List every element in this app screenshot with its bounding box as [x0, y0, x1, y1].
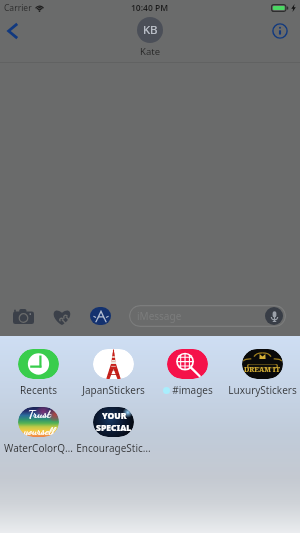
button[interactable]: App Store — [90, 307, 111, 325]
staticText: iMessage — [137, 309, 182, 323]
button[interactable]: JapanStickers — [76, 349, 151, 397]
button[interactable]: Back — [1, 19, 25, 43]
staticText: Kate — [140, 45, 160, 58]
button[interactable]: iMessage — [129, 305, 286, 327]
staticText: KB — [143, 22, 158, 38]
button[interactable]: YOUR — [76, 407, 151, 455]
staticText: WaterColorQuo... — [1, 441, 76, 455]
button[interactable]: Dictate — [265, 307, 283, 325]
button[interactable]: Recents — [1, 349, 76, 397]
staticText: YOUR — [102, 410, 127, 422]
button[interactable]: KB — [137, 17, 163, 58]
staticText: LuxuryStickers — [228, 383, 297, 397]
staticText: Trust — [28, 407, 51, 421]
staticText: yourself — [24, 425, 56, 437]
button[interactable]: Trust — [1, 407, 76, 455]
staticText: JapanStickers — [82, 383, 145, 397]
button[interactable]: Details — [268, 19, 292, 43]
staticText: Recents — [20, 383, 57, 397]
staticText: Carrier — [4, 2, 32, 14]
staticText: 10:40 PM — [131, 2, 169, 14]
staticText: SPECIAL — [96, 422, 132, 434]
staticText: #images — [172, 383, 213, 397]
staticText: DREAM IT — [244, 365, 281, 375]
button[interactable]: Digital Touch — [52, 308, 72, 325]
button[interactable]: Camera — [13, 308, 34, 324]
button[interactable]: DREAM IT — [225, 349, 300, 397]
staticText: EncourageStick... — [76, 441, 151, 455]
button[interactable]: #images — [150, 349, 225, 397]
